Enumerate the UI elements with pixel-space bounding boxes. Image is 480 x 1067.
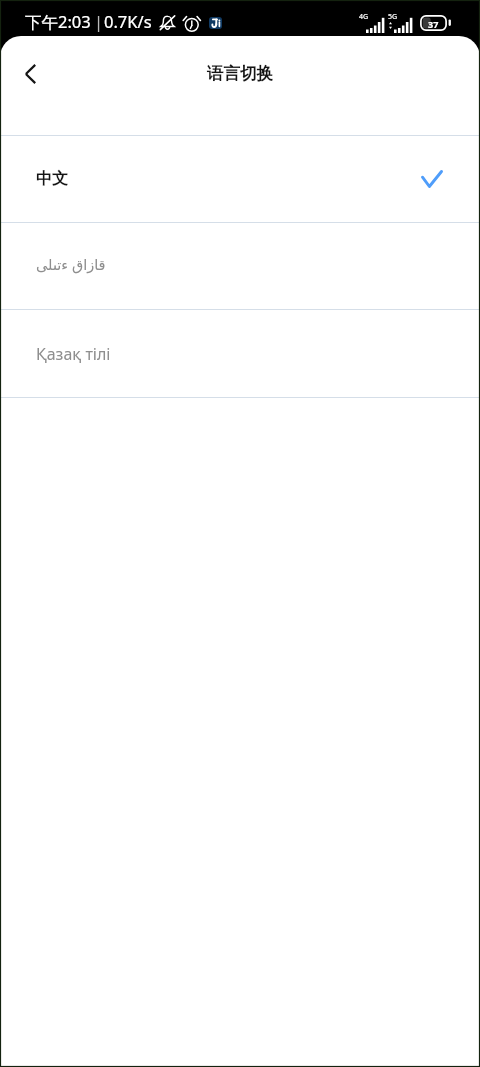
- staticText: 37: [428, 18, 439, 30]
- button[interactable]: 中文: [0, 136, 480, 222]
- staticText: 中文: [36, 169, 68, 189]
- staticText: 语言切换: [207, 63, 273, 84]
- staticText: 0.7K/s: [104, 10, 152, 32]
- button[interactable]: Қазақ тілі: [0, 310, 480, 397]
- staticText: 4G: [359, 12, 369, 22]
- button[interactable]: قازاق ءتىلى: [0, 223, 480, 309]
- staticText: |: [94, 10, 104, 32]
- staticText: 下午2:03: [25, 10, 91, 33]
- staticText: قازاق ءتىلى: [36, 254, 106, 274]
- staticText: Қазақ тілі: [36, 343, 111, 365]
- button[interactable]: Back: [4, 48, 56, 100]
- staticText: 5G: [388, 12, 398, 22]
